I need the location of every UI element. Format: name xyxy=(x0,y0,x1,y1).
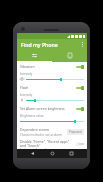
staticText: Dependent screen xyxy=(20,127,50,132)
staticText: Vibration xyxy=(20,64,74,69)
staticText: Intensity xyxy=(20,72,33,76)
staticText: Proposed xyxy=(69,130,82,134)
staticText: Intensity xyxy=(20,93,33,97)
button[interactable]: Dependent screen xyxy=(17,125,87,139)
button[interactable]: More options xyxy=(78,40,87,49)
staticText: Brightness value xyxy=(20,114,44,118)
staticText: Set Alarm screen brightness xyxy=(20,106,74,111)
button[interactable]: Home xyxy=(48,149,57,158)
button[interactable]: Back xyxy=(28,149,37,158)
button[interactable]: Vibration xyxy=(17,62,87,71)
button[interactable]: Set Alarm screen brightness xyxy=(17,104,87,113)
staticText: Choose method to use as alarm xyxy=(20,133,62,137)
staticText: Disable "Home", "Recent apps" and "Searc… xyxy=(20,139,74,149)
button[interactable]: Device tab xyxy=(52,50,87,61)
button[interactable]: Intensity xyxy=(17,71,87,83)
button[interactable]: Disable "Home", "Recent apps" and "Searc… xyxy=(17,139,87,149)
staticText: Flash xyxy=(20,85,74,90)
staticText: Find my Phone xyxy=(21,41,58,48)
button[interactable]: Intensity xyxy=(17,92,87,104)
button[interactable]: Brightness value xyxy=(17,113,87,125)
button[interactable]: Recent apps xyxy=(67,149,76,158)
button[interactable]: Flash xyxy=(17,83,87,92)
button[interactable]: Settings tab xyxy=(17,50,52,61)
